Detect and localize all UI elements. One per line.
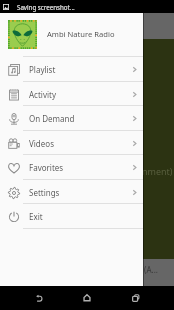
button[interactable]: Favorites	[0, 155, 143, 179]
button[interactable]: Settings	[0, 180, 143, 204]
staticText: Activity	[29, 89, 131, 100]
staticText: Saving screenshot...	[17, 3, 75, 11]
staticText: Exit	[29, 211, 131, 222]
staticText: nment)	[142, 165, 173, 177]
staticText: Settings	[29, 187, 131, 198]
button[interactable]: Playlist	[0, 57, 143, 81]
staticText: Videos	[29, 138, 131, 149]
button[interactable]: Exit	[0, 204, 143, 228]
button[interactable]: Home	[75, 286, 99, 310]
button[interactable]: Back	[27, 286, 51, 310]
staticText: (A...	[144, 264, 158, 275]
staticText: Ambi Nature Radio	[47, 29, 115, 39]
staticText: Playlist	[29, 64, 131, 75]
staticText: On Demand	[29, 113, 131, 124]
button[interactable]: Ambi Nature Radio	[0, 13, 143, 56]
button[interactable]: On Demand	[0, 106, 143, 130]
button[interactable]: Recent apps	[124, 286, 148, 310]
button[interactable]: Activity	[0, 82, 143, 106]
staticText: Favorites	[29, 162, 131, 173]
button[interactable]: Videos	[0, 131, 143, 155]
